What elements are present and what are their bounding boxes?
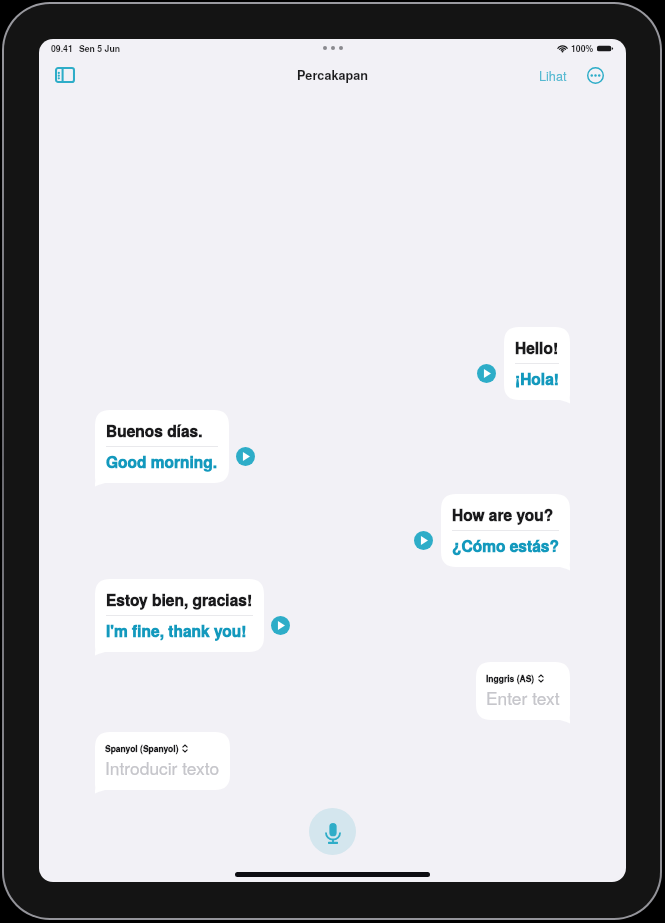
button[interactable]: Estoy bien, gracias!	[95, 579, 264, 657]
staticText: I'm fine, thank you!	[106, 620, 247, 642]
button[interactable]: Play audio	[477, 364, 496, 383]
staticText: Percakapan	[297, 66, 369, 84]
staticText: Lihat	[539, 66, 567, 84]
button[interactable]: Play audio	[236, 447, 255, 466]
staticText: Inggris (AS)	[486, 672, 535, 684]
staticText: Enter text	[486, 685, 560, 710]
staticText: Hello!	[515, 337, 559, 359]
button[interactable]: Lihat	[535, 61, 571, 89]
button[interactable]: Play audio	[271, 616, 290, 635]
staticText: Estoy bien, gracias!	[106, 589, 253, 611]
staticText: Introducir texto	[105, 755, 220, 780]
staticText: Buenos días.	[106, 420, 203, 442]
button[interactable]: Spanyol (Spanyol)	[95, 732, 230, 795]
staticText: How are you?	[452, 504, 554, 526]
staticText: Sen 5 Jun	[79, 42, 121, 54]
staticText: ¡Hola!	[515, 368, 559, 390]
button[interactable]: Buenos días.	[95, 410, 229, 488]
button[interactable]: More options	[585, 65, 605, 85]
staticText: 09.41	[51, 42, 73, 54]
button[interactable]: Record audio	[309, 808, 356, 855]
button[interactable]: Play audio	[414, 531, 433, 550]
staticText: 100%	[571, 42, 594, 54]
staticText: Spanyol (Spanyol)	[105, 742, 179, 754]
button[interactable]: Show sidebar	[48, 61, 82, 89]
button[interactable]: How are you?	[441, 494, 570, 572]
staticText: ¿Cómo estás?	[452, 535, 559, 557]
staticText: Good morning.	[106, 451, 218, 473]
button[interactable]: Inggris (AS)	[476, 662, 570, 725]
button[interactable]: Hello!	[504, 327, 570, 405]
